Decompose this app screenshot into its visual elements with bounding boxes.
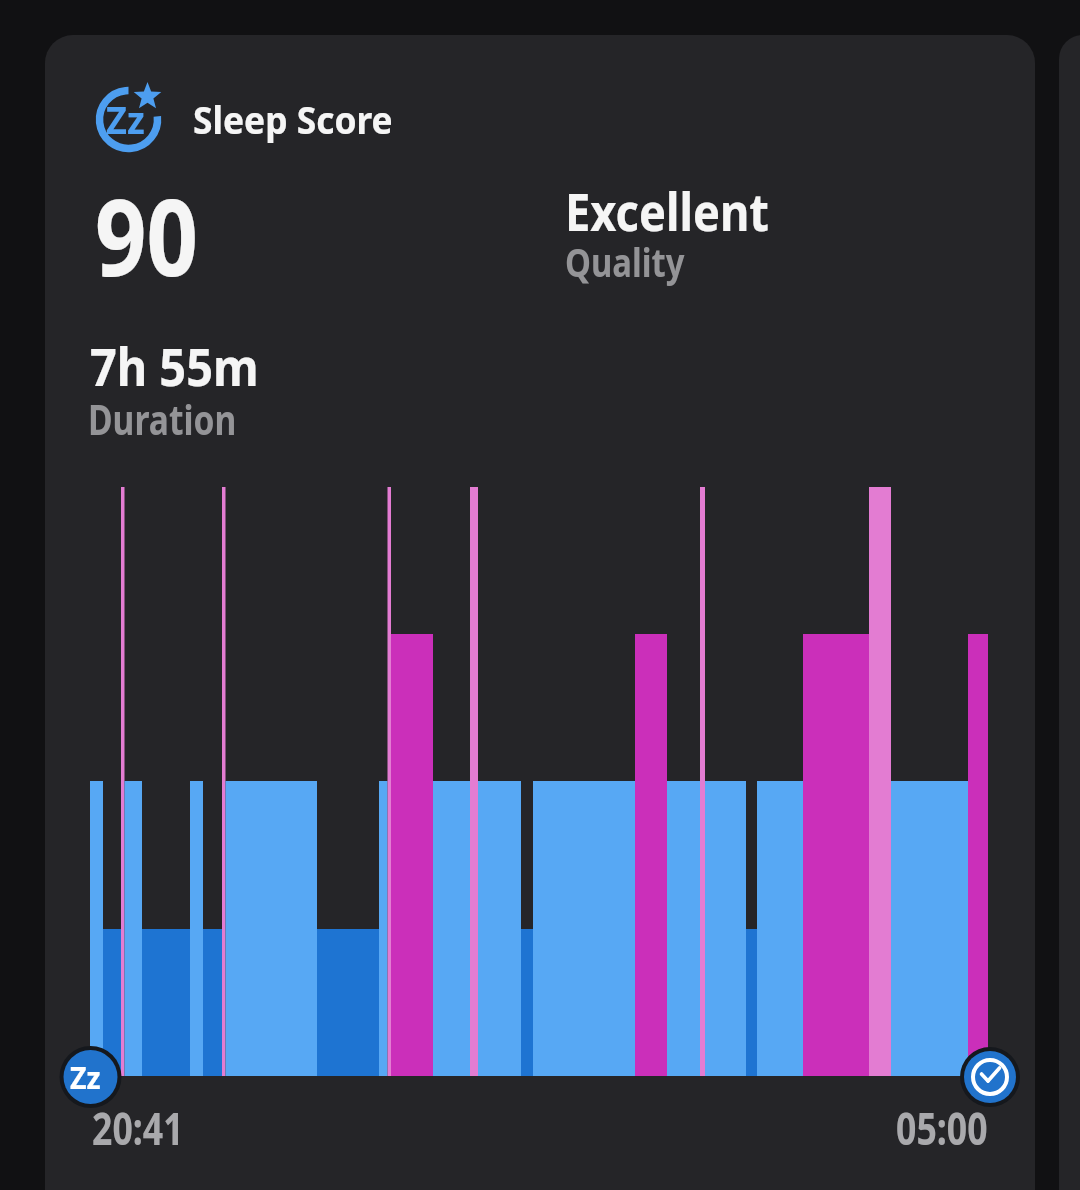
staticText: 05:00 [896,1098,988,1158]
staticText: Zz [70,1057,101,1098]
staticText: Sleep Score [193,93,393,145]
staticText: 20:41 [92,1098,184,1158]
staticText: Zz [106,93,145,145]
staticText: 7h 55m [90,330,259,401]
staticText: 90 [95,163,199,307]
button[interactable] [45,35,1035,1190]
staticText: Excellent [565,175,769,246]
staticText: Duration [88,390,237,447]
staticText: Quality [565,234,685,288]
